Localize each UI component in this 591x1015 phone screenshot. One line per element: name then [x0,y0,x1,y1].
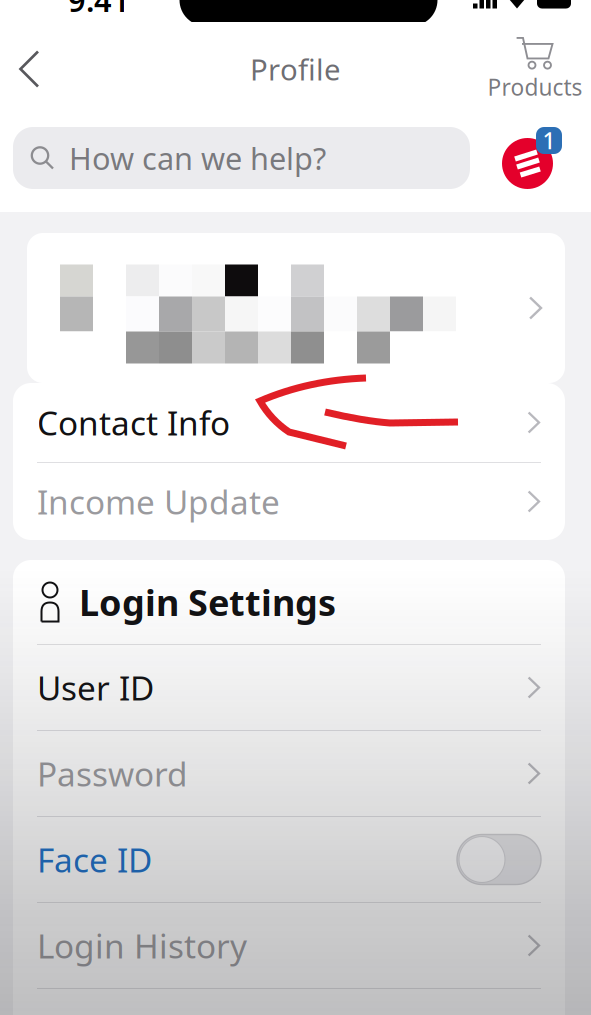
button[interactable]: Password [13,731,565,816]
staticText: 9:41 [68,0,130,20]
staticText: Password [37,751,188,796]
staticText: Profile [250,49,341,88]
staticText: How can we help? [69,138,326,178]
button[interactable]: Products [485,32,585,106]
button[interactable]: Assistance [502,127,562,189]
button[interactable]: Profile details [27,233,565,383]
button[interactable]: How can we help? [13,127,470,189]
button[interactable]: Income Update [13,463,565,540]
staticText: User ID [37,665,154,710]
button[interactable]: Face ID [13,817,565,902]
staticText: 1 [542,125,555,155]
staticText: Login Settings [79,578,336,626]
button[interactable]: Contact Info [13,383,565,462]
staticText: Income Update [37,479,280,524]
staticText: Products [487,72,582,102]
staticText: Login History [37,923,247,968]
button[interactable]: Back [0,34,58,104]
button[interactable]: User ID [13,645,565,730]
staticText: Face ID [37,837,152,882]
button[interactable]: Login History [13,903,565,988]
staticText: Contact Info [37,400,230,445]
